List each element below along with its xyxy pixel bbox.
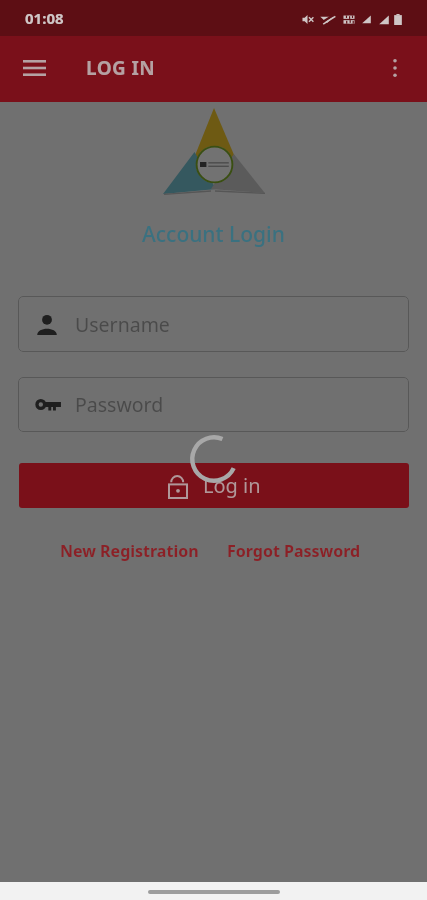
staticText: Log in [203,472,261,499]
staticText: 01:08 [25,8,64,28]
staticText: Password [75,391,164,418]
button[interactable]: Open navigation menu [12,47,56,91]
button[interactable]: More options [375,49,415,89]
staticText: Account Login [142,220,285,249]
button[interactable]: Password [18,377,409,432]
staticText: LOG IN [86,55,156,81]
button[interactable]: Username [18,296,409,352]
button[interactable]: Log in [19,463,409,508]
button[interactable]: Forgot Password [224,538,364,564]
staticText: Username [75,311,170,338]
button[interactable]: New Registration [57,538,202,564]
